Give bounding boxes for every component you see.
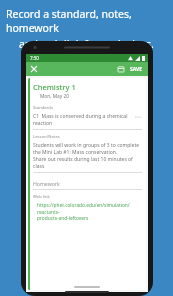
button[interactable]: Calendar (115, 63, 127, 75)
staticText: SAVE (130, 66, 143, 73)
staticText: C1 Mass is conserved during a chemical r… (33, 113, 134, 127)
button[interactable]: Students will work in groups of 3 to com… (33, 142, 142, 170)
staticText: Record a standard, notes, homework (6, 7, 167, 35)
staticText: Standards (33, 105, 53, 111)
button[interactable]: SAVE (128, 64, 145, 75)
staticText: and web link for each class. (19, 37, 154, 51)
staticText: Web link (33, 194, 50, 200)
staticText: Mon, May 20 (40, 93, 69, 100)
button[interactable]: Close (28, 63, 40, 75)
button[interactable]: C1 Mass is conserved during a chemical r… (33, 113, 142, 127)
button[interactable]: https://phet.colorado.edu/en/simulation/… (37, 202, 142, 222)
staticText: 7:50 (30, 55, 39, 61)
staticText: Lesson/Notes (33, 134, 60, 140)
button[interactable]: More options (134, 113, 142, 121)
button[interactable]: Homework (33, 180, 142, 187)
staticText: Chemistry 1 (33, 82, 76, 92)
